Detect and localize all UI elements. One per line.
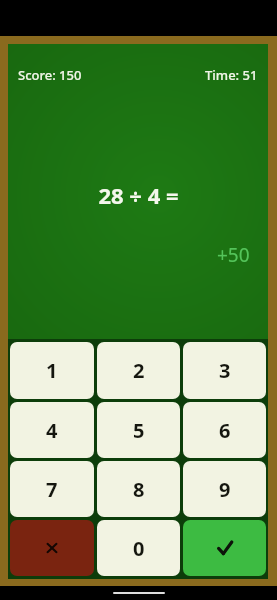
button[interactable]: 7 xyxy=(10,461,94,517)
button[interactable]: 3 xyxy=(183,342,266,399)
staticText: Time: 51 xyxy=(205,66,258,84)
button[interactable]: 0 xyxy=(97,520,180,576)
staticText: +50 xyxy=(217,242,250,268)
staticText: 9 xyxy=(219,476,231,503)
button[interactable]: Submit answer xyxy=(183,520,266,576)
staticText: 5 xyxy=(133,417,145,444)
button[interactable]: 4 xyxy=(10,402,94,458)
staticText: 2 xyxy=(133,357,145,384)
button[interactable]: 1 xyxy=(10,342,94,399)
button[interactable]: 6 xyxy=(183,402,266,458)
staticText: 6 xyxy=(219,417,231,444)
staticText: 3 xyxy=(219,357,231,384)
button[interactable]: 9 xyxy=(183,461,266,517)
staticText: 7 xyxy=(46,476,58,503)
staticText: 0 xyxy=(133,535,145,562)
button[interactable]: Clear xyxy=(10,520,94,576)
staticText: 8 xyxy=(133,476,145,503)
staticText: 1 xyxy=(46,357,58,384)
button[interactable]: 2 xyxy=(97,342,180,399)
staticText: Score: 150 xyxy=(18,66,82,84)
staticText: 4 xyxy=(46,417,58,444)
staticText: 28 ÷ 4 = xyxy=(98,180,179,210)
button[interactable]: 5 xyxy=(97,402,180,458)
button[interactable]: 8 xyxy=(97,461,180,517)
